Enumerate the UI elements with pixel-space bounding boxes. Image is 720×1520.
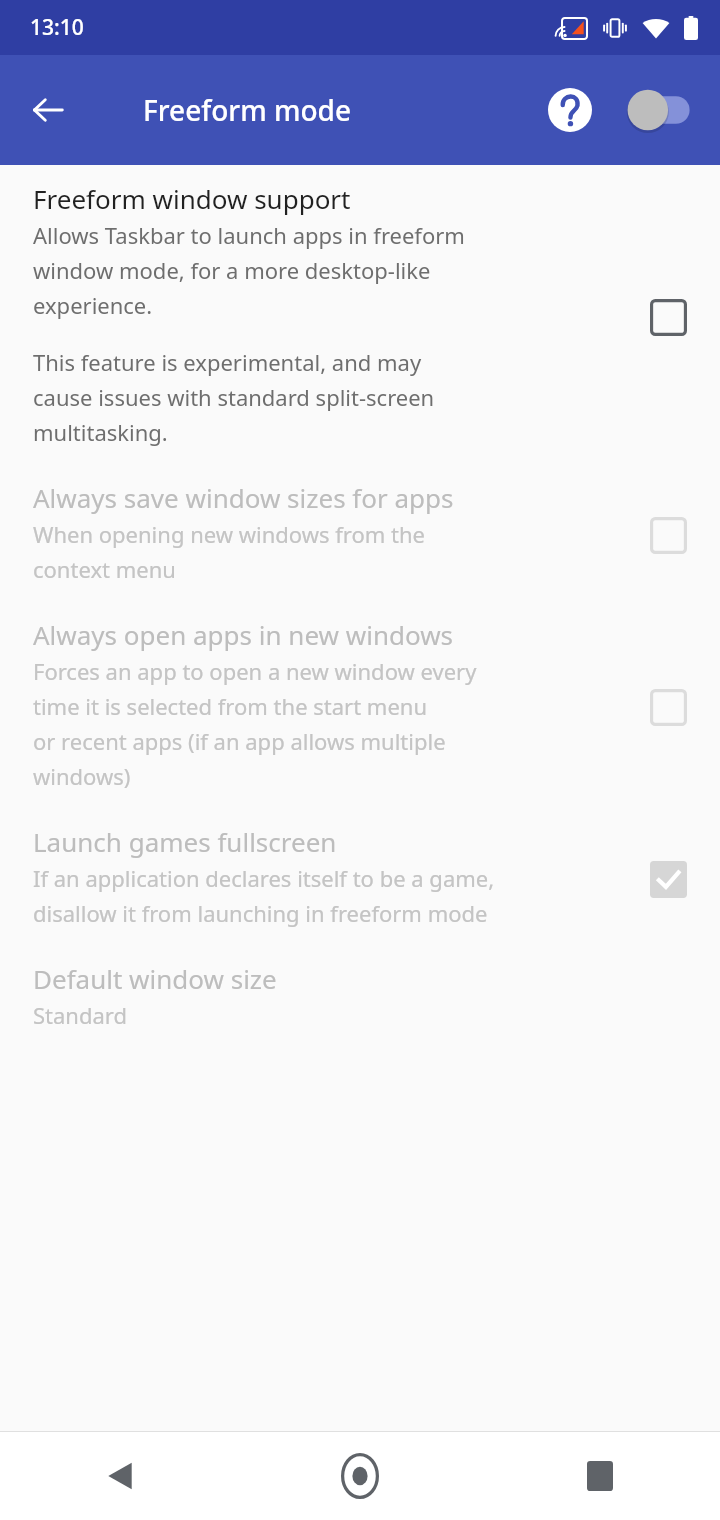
staticText: Default window size: [33, 961, 277, 996]
button[interactable]: Help: [538, 78, 602, 142]
staticText: experience.: [33, 290, 153, 320]
staticText: Freeform mode: [143, 91, 352, 129]
button[interactable]: Freeform window support: [0, 181, 720, 452]
staticText: windows): [33, 761, 131, 791]
staticText: 13:10: [30, 13, 84, 42]
staticText: When opening new windows from the: [33, 519, 425, 549]
staticText: multitasking.: [33, 417, 168, 447]
staticText: disallow it from launching in freeform m…: [33, 898, 488, 928]
button[interactable]: Toggle freeform mode: [620, 80, 700, 140]
staticText: or recent apps (if an app allows multipl…: [33, 726, 446, 756]
button[interactable]: Launch games fullscreen: [0, 824, 720, 933]
staticText: Freeform window support: [33, 181, 351, 216]
staticText: Allows Taskbar to launch apps in freefor…: [33, 220, 465, 250]
staticText: window mode, for a more desktop-like: [33, 255, 431, 285]
staticText: Launch games fullscreen: [33, 824, 337, 859]
button[interactable]: Home: [240, 1432, 480, 1520]
staticText: cause issues with standard split-screen: [33, 382, 435, 412]
button[interactable]: Back: [14, 76, 82, 144]
staticText: Always open apps in new windows: [33, 617, 454, 652]
staticText: Always save window sizes for apps: [33, 480, 454, 515]
staticText: context menu: [33, 554, 176, 584]
button[interactable]: Recent apps: [480, 1432, 720, 1520]
button[interactable]: Default window size: [0, 961, 720, 1035]
staticText: time it is selected from the start menu: [33, 691, 427, 721]
staticText: This feature is experimental, and may: [33, 347, 422, 377]
staticText: If an application declares itself to be …: [33, 863, 495, 893]
button[interactable]: Back: [0, 1432, 240, 1520]
button[interactable]: Always save window sizes for apps: [0, 480, 720, 589]
button[interactable]: Always open apps in new windows: [0, 617, 720, 796]
staticText: Standard: [33, 1000, 128, 1030]
staticText: Forces an app to open a new window every: [33, 656, 477, 686]
